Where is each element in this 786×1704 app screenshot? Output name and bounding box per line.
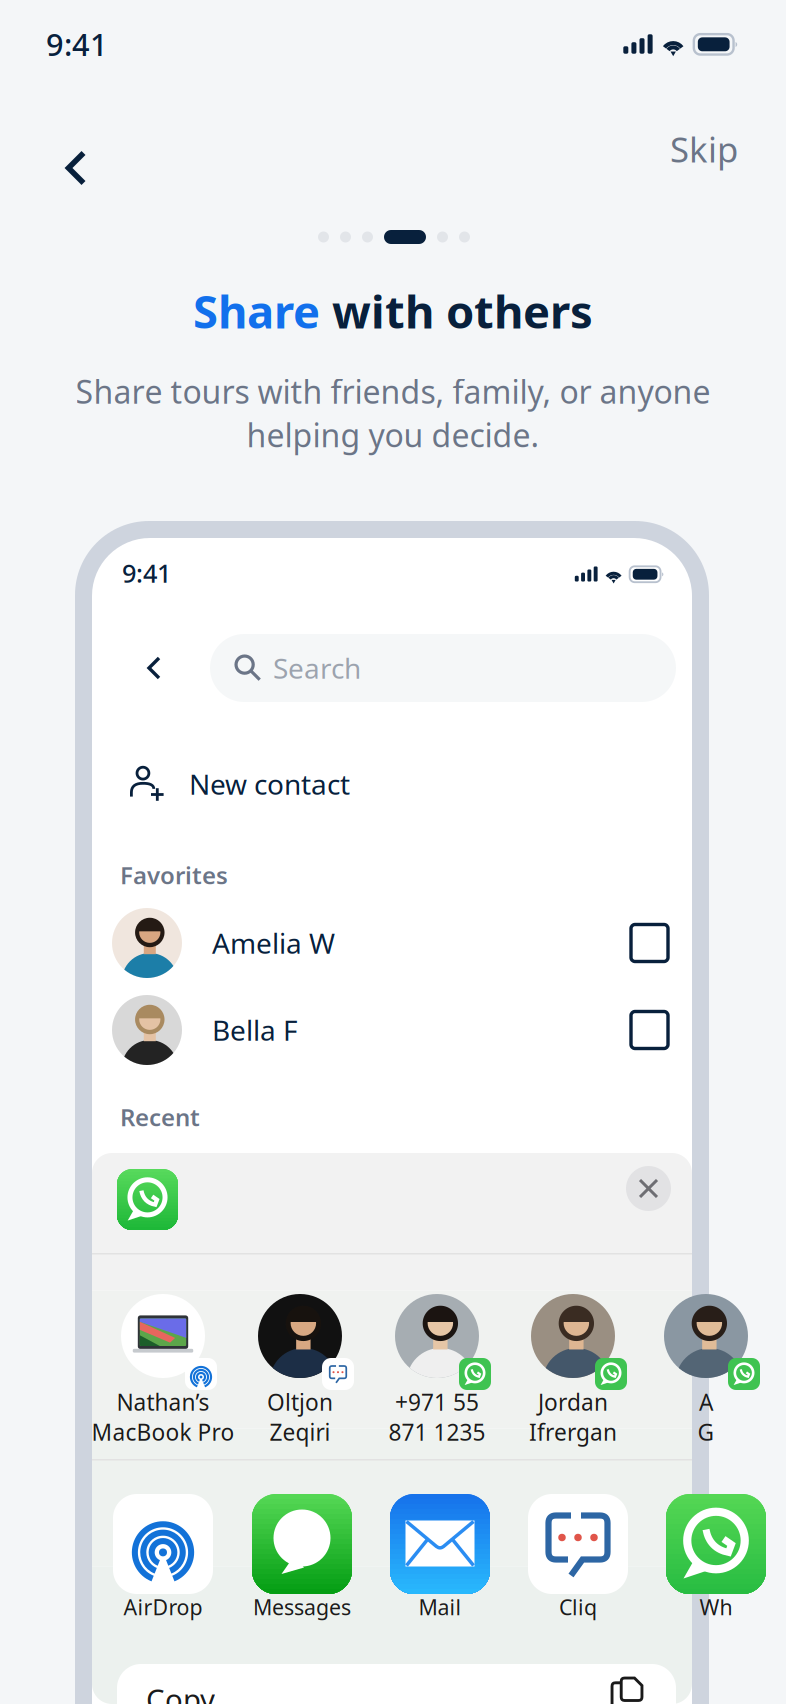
staticText: Zeqiri xyxy=(269,1417,330,1447)
button[interactable]: Amelia W xyxy=(0,0,786,1704)
staticText: Bella F xyxy=(212,1011,298,1049)
button[interactable]: Copy xyxy=(0,0,786,1704)
staticText: Wh xyxy=(699,1593,732,1621)
staticText: Jordan xyxy=(538,1387,608,1417)
button[interactable]: Wh xyxy=(0,0,786,1704)
staticText: Favorites xyxy=(120,859,228,891)
staticText: Nathan’s xyxy=(116,1387,209,1417)
staticText: Cliq xyxy=(559,1593,597,1621)
staticText: Messages xyxy=(253,1593,351,1621)
button[interactable]: Bella F xyxy=(0,0,786,1704)
staticText: A xyxy=(699,1387,713,1417)
staticText: Copy xyxy=(146,1679,215,1704)
button[interactable]: New contact xyxy=(0,0,786,1704)
staticText: 9:41 xyxy=(46,24,108,64)
staticText: Ifrergan xyxy=(529,1417,617,1447)
staticText: Oltjon xyxy=(267,1387,333,1417)
staticText: Amelia W xyxy=(212,924,335,962)
button[interactable]: Mail xyxy=(0,0,786,1704)
button[interactable]: Skip xyxy=(0,0,786,1704)
staticText: +971 55 xyxy=(395,1387,479,1417)
button[interactable]: Oltjon xyxy=(0,0,786,1704)
staticText: Recent xyxy=(120,1101,200,1133)
staticText: 9:41 xyxy=(122,556,171,590)
staticText: G xyxy=(697,1417,714,1447)
staticText: Search xyxy=(273,649,361,687)
staticText: Share xyxy=(193,281,320,341)
button[interactable]: Back xyxy=(0,0,786,1704)
button[interactable]: Close xyxy=(0,0,786,1704)
staticText: helping you decide. xyxy=(246,413,539,456)
button[interactable]: Back xyxy=(0,0,786,1704)
staticText: New contact xyxy=(189,765,350,803)
button[interactable]: +971 55 xyxy=(0,0,786,1704)
staticText: 871 1235 xyxy=(388,1417,485,1447)
staticText: Skip xyxy=(670,126,738,172)
staticText: Mail xyxy=(418,1593,461,1621)
button[interactable]: Messages xyxy=(0,0,786,1704)
button[interactable]: Nathan’s xyxy=(0,0,786,1704)
staticText: MacBook Pro xyxy=(91,1417,234,1447)
button[interactable]: Cliq xyxy=(0,0,786,1704)
staticText: AirDrop xyxy=(123,1593,202,1621)
button[interactable]: Jordan xyxy=(0,0,786,1704)
staticText: Share tours with friends, family, or any… xyxy=(75,370,710,412)
staticText: with others xyxy=(320,281,593,341)
button[interactable]: AirDrop xyxy=(0,0,786,1704)
button[interactable]: A xyxy=(0,0,786,1704)
